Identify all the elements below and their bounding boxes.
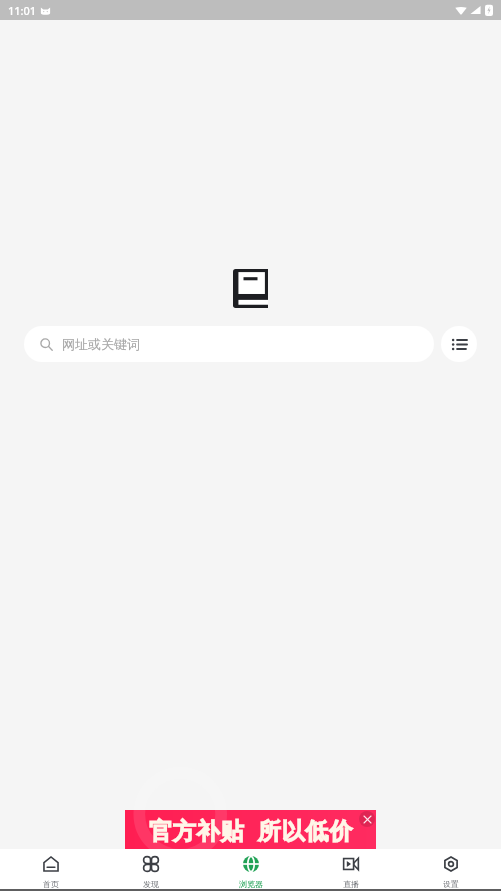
button[interactable]: 搜索 网址或关键词 (24, 326, 434, 362)
staticText: 发现 (143, 879, 159, 889)
staticText: 11:01 (8, 3, 37, 18)
staticText: 网址或关键词 (62, 336, 140, 352)
button[interactable]: Bookmarks (441, 326, 477, 362)
button[interactable]: Close ad (359, 811, 375, 827)
staticText: 首页 (43, 879, 59, 889)
button[interactable]: 直播 (301, 849, 401, 889)
button[interactable]: 首页 (0, 849, 101, 889)
button[interactable]: 设置 (401, 849, 501, 889)
staticText: 设置 (443, 879, 459, 889)
button[interactable]: 发现 (101, 849, 201, 889)
button[interactable]: 浏览器 (201, 849, 301, 889)
staticText: 官方补贴 所以低价 (149, 814, 353, 845)
staticText: 浏览器 (239, 879, 263, 889)
button[interactable]: 官方补贴 所以低价 (125, 810, 376, 849)
staticText: 直播 (343, 879, 359, 889)
